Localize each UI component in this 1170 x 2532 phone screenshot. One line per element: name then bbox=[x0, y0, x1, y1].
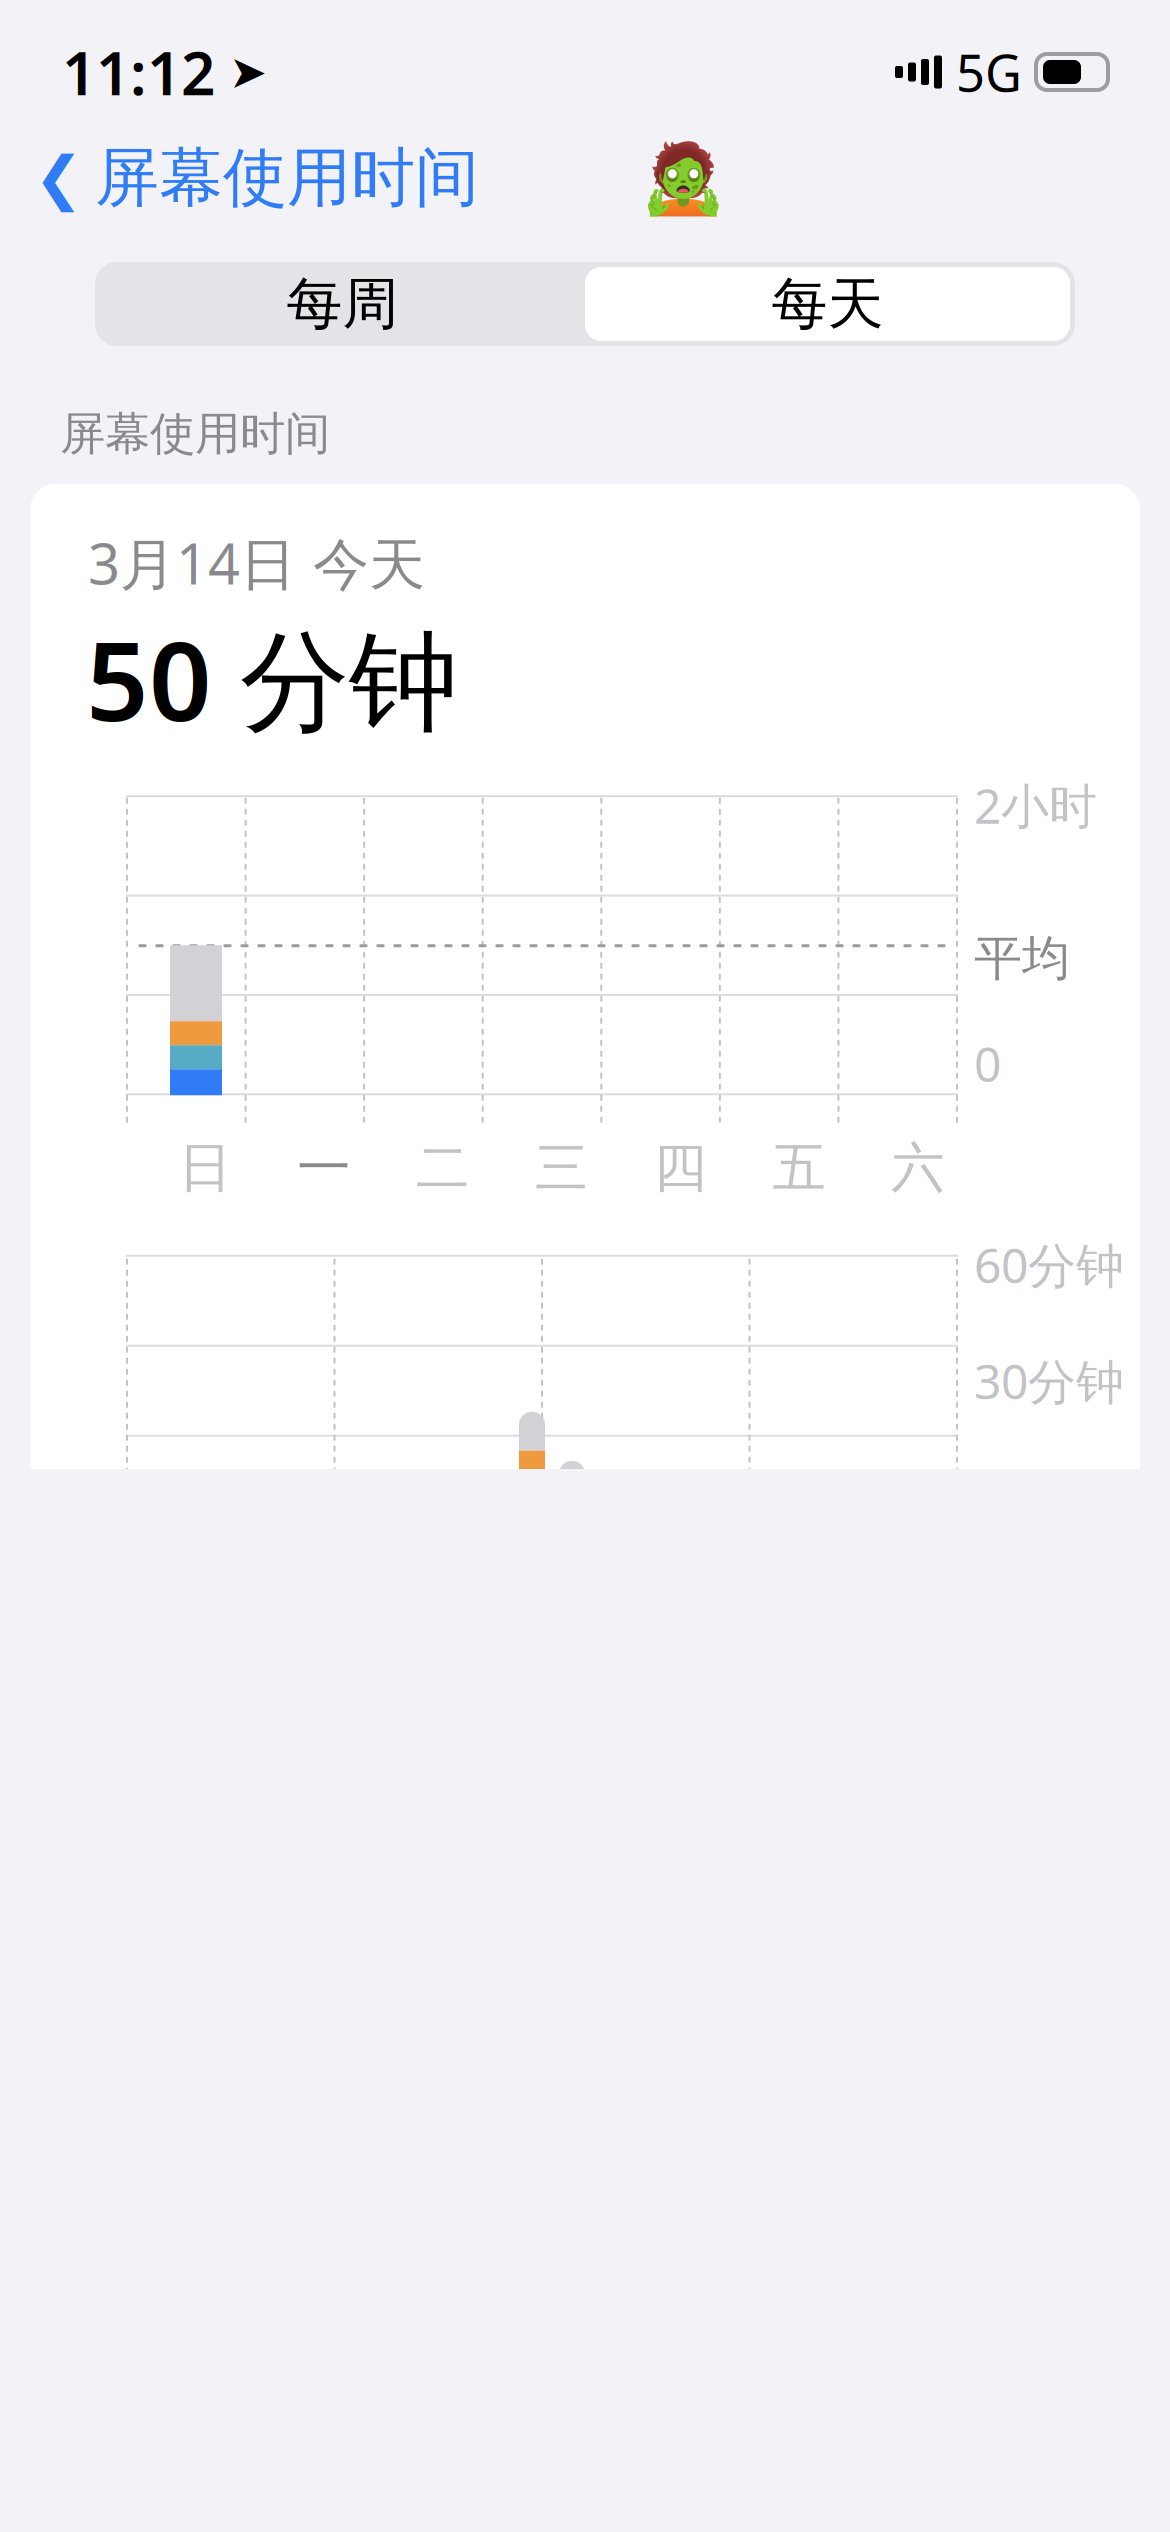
staticText: 2小时 bbox=[974, 773, 1097, 837]
staticText: 日 bbox=[178, 1135, 231, 1201]
button[interactable]: ❮ bbox=[34, 129, 479, 227]
staticText: 3月14日 今天 bbox=[88, 526, 425, 600]
staticText: 30分钟 bbox=[974, 1349, 1124, 1413]
staticText: 五 bbox=[772, 1135, 825, 1201]
staticText: 🧟 bbox=[639, 138, 725, 218]
staticText: 11:12 bbox=[62, 32, 215, 112]
staticText: 0 bbox=[974, 1031, 1001, 1095]
staticText: 一 bbox=[297, 1135, 350, 1201]
staticText: 0 bbox=[974, 1465, 1001, 1529]
button[interactable]: 每周 bbox=[100, 267, 585, 341]
staticText: 每天 bbox=[771, 270, 883, 338]
staticText: 50 分钟 bbox=[86, 606, 458, 751]
button[interactable]: 个人头像 bbox=[640, 136, 724, 220]
button[interactable]: 每天 bbox=[585, 267, 1070, 341]
staticText: 平均 bbox=[974, 929, 1070, 988]
staticText: 三 bbox=[535, 1135, 588, 1201]
staticText: 屏幕使用时间 bbox=[60, 406, 330, 462]
staticText: 六 bbox=[891, 1135, 944, 1201]
staticText: ❮ bbox=[34, 145, 83, 211]
staticText: 二 bbox=[416, 1135, 469, 1201]
staticText: 四 bbox=[654, 1135, 707, 1201]
staticText: 5G bbox=[956, 38, 1022, 106]
staticText: 屏幕使用时间 bbox=[95, 139, 479, 217]
staticText: 每周 bbox=[286, 270, 398, 338]
staticText: ➤ bbox=[229, 46, 267, 98]
staticText: 60分钟 bbox=[974, 1233, 1124, 1296]
